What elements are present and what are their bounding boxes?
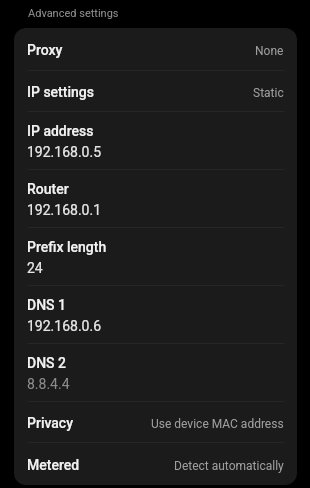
- button[interactable]: Router: [14, 170, 297, 227]
- staticText: IP settings: [27, 84, 94, 100]
- staticText: Advanced settings: [28, 7, 119, 20]
- button[interactable]: Prefix length: [14, 228, 297, 285]
- staticText: 192.168.0.1: [27, 202, 102, 218]
- staticText: Proxy: [27, 42, 63, 58]
- button[interactable]: DNS 1: [14, 286, 297, 343]
- button[interactable]: Proxy: [14, 28, 297, 70]
- button[interactable]: Privacy: [14, 402, 297, 442]
- staticText: 24: [27, 260, 43, 276]
- staticText: 8.8.4.4: [27, 376, 70, 392]
- staticText: Privacy: [27, 415, 74, 431]
- staticText: Metered: [27, 457, 80, 473]
- staticText: 192.168.0.5: [27, 144, 102, 160]
- staticText: IP address: [27, 123, 94, 139]
- button[interactable]: Metered: [14, 443, 297, 485]
- staticText: DNS 1: [27, 297, 66, 313]
- staticText: 192.168.0.6: [27, 318, 102, 334]
- staticText: Prefix length: [27, 239, 107, 255]
- button[interactable]: DNS 2: [14, 344, 297, 401]
- staticText: Detect automatically: [174, 459, 284, 473]
- staticText: Use device MAC address: [151, 417, 284, 431]
- button[interactable]: IP settings: [14, 71, 297, 111]
- button[interactable]: IP address: [14, 112, 297, 169]
- staticText: Router: [27, 181, 69, 197]
- staticText: None: [255, 44, 284, 58]
- staticText: Static: [253, 86, 284, 100]
- staticText: DNS 2: [27, 355, 66, 371]
